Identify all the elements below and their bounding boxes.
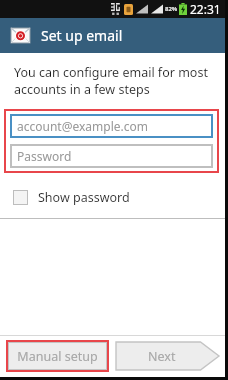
other: Email app icon [11,28,30,43]
staticText: Password [17,148,72,164]
button[interactable]: Manual setup [8,342,107,370]
button[interactable]: Show password [0,184,225,210]
staticText: Manual setup [17,348,98,365]
staticText: 82% [165,5,178,13]
staticText: account@example.com [17,118,148,134]
button[interactable]: Password field [10,144,213,168]
staticText: Set up email [41,26,123,45]
staticText: Show password [38,189,130,206]
staticText: You can configure email for most account… [14,64,208,97]
staticText: 22:31 [190,1,221,17]
staticText: Next [148,348,176,365]
button[interactable]: Email address field [10,114,213,138]
button[interactable]: Next [116,342,219,370]
